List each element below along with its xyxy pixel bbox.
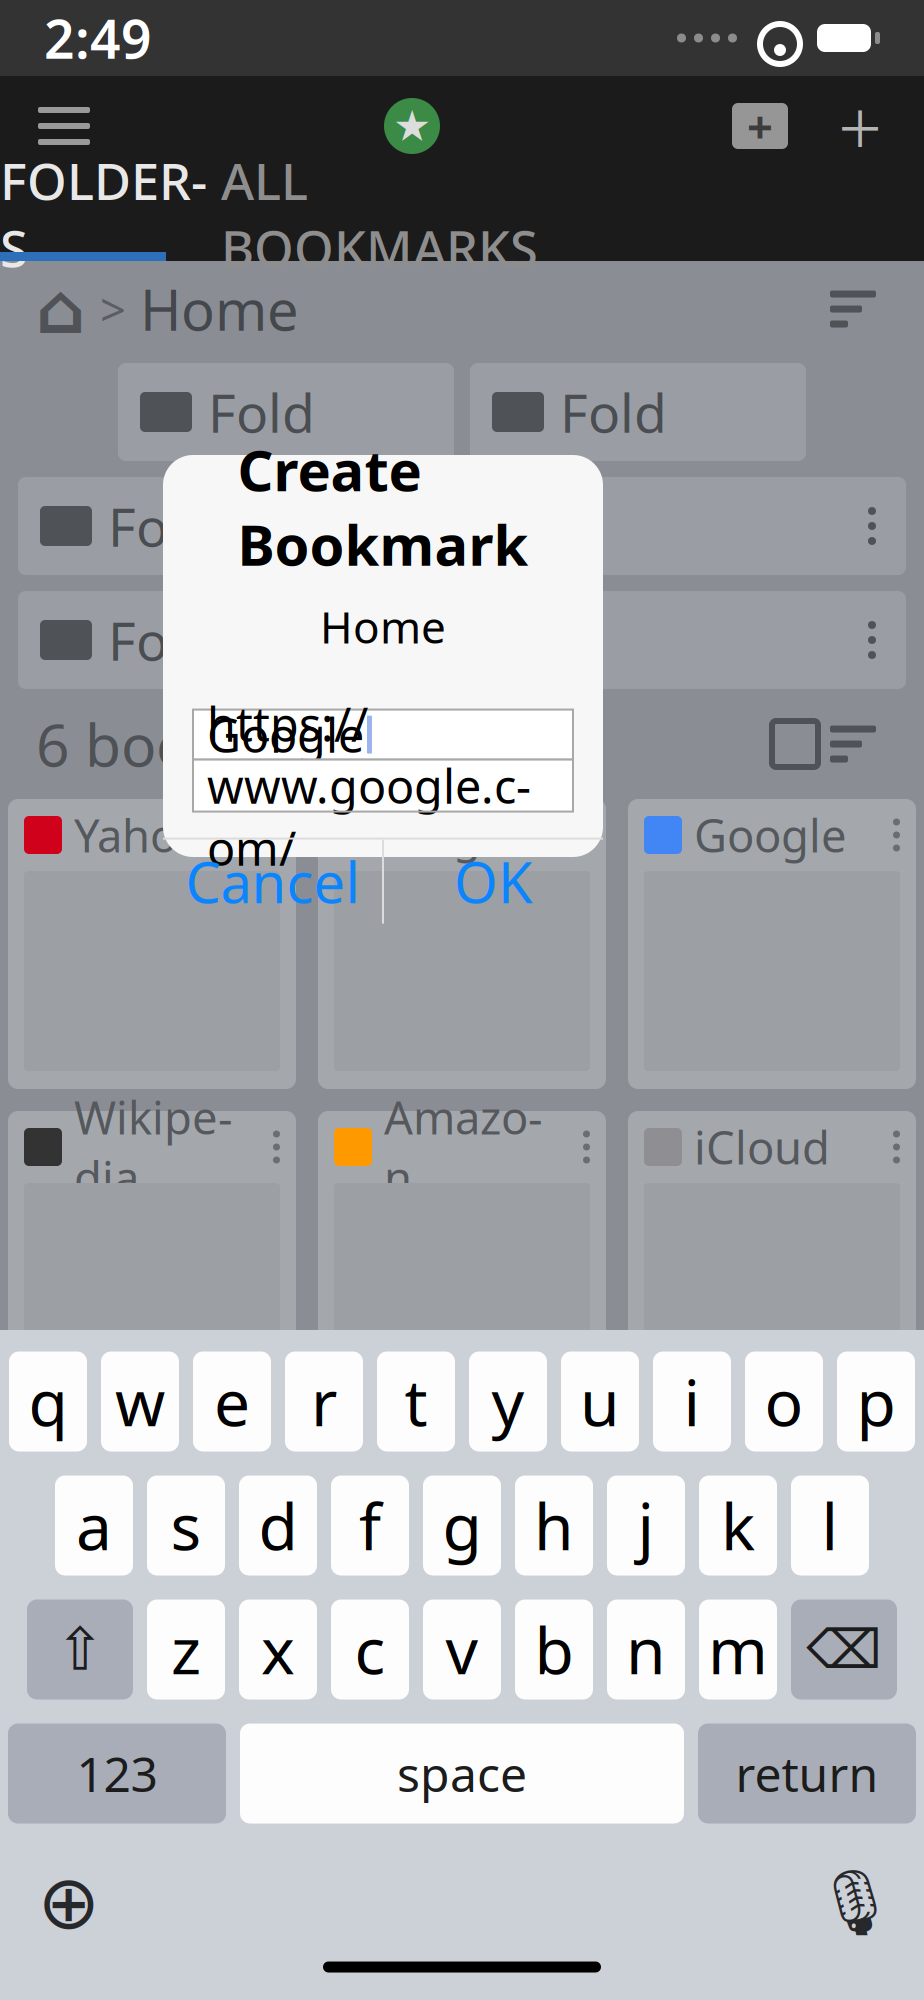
button[interactable]: s (147, 1475, 225, 1575)
button[interactable]: Fold (18, 477, 906, 575)
staticText: Cancel (185, 844, 359, 919)
staticText: t (404, 1359, 427, 1444)
staticText: ⌂ (36, 270, 86, 348)
button[interactable]: u (561, 1351, 639, 1451)
button[interactable]: f (331, 1475, 409, 1575)
staticText: FOLDERS (0, 147, 207, 281)
button[interactable]: Amazon (318, 1111, 606, 1401)
staticText: y (491, 1359, 524, 1444)
button[interactable]: n (607, 1599, 685, 1699)
button[interactable]: Wikipedia (8, 1111, 296, 1401)
button[interactable]: Google (628, 799, 916, 1089)
button[interactable]: j (607, 1475, 685, 1575)
button[interactable]: v (423, 1599, 501, 1699)
button[interactable]: y (469, 1351, 547, 1451)
button[interactable]: r (285, 1351, 363, 1451)
button[interactable]: d (239, 1475, 317, 1575)
button[interactable]: Grid view (772, 721, 818, 767)
button[interactable]: Fold (118, 363, 454, 461)
staticText: v (445, 1607, 478, 1692)
staticText: k (721, 1483, 755, 1568)
button[interactable]: w (101, 1351, 179, 1451)
button[interactable]: OK (384, 840, 603, 924)
staticText: ★ (393, 102, 431, 150)
staticText: Google (694, 805, 847, 865)
staticText: l (821, 1483, 838, 1568)
button[interactable]: x (239, 1599, 317, 1699)
button[interactable]: ALL BOOKMARKS (207, 176, 552, 252)
staticText: Google (207, 704, 364, 766)
staticText: m (708, 1607, 768, 1692)
staticText: u (580, 1359, 620, 1444)
button[interactable]: o (745, 1351, 823, 1451)
staticText: i (683, 1359, 700, 1444)
staticText: 2:49 (44, 3, 152, 73)
staticText: Fold (108, 491, 215, 561)
button[interactable]: Sort (818, 274, 888, 344)
button[interactable]: a (55, 1475, 133, 1575)
button[interactable]: Fold (18, 591, 906, 689)
staticText: p (856, 1359, 895, 1444)
button[interactable]: p (837, 1351, 915, 1451)
staticText: x (261, 1607, 295, 1692)
button[interactable]: b (515, 1599, 593, 1699)
button[interactable]: Yahoo! (8, 799, 296, 1089)
button[interactable]: iCloud (628, 1111, 916, 1401)
button[interactable]: Shift (27, 1599, 133, 1699)
button[interactable]: return (698, 1723, 916, 1823)
button[interactable]: New folder (710, 76, 810, 176)
staticText: ⇧ (55, 1616, 104, 1683)
staticText: iCloud (694, 1117, 830, 1177)
staticText: Fold (560, 377, 667, 447)
button[interactable]: t (377, 1351, 455, 1451)
staticText: 123 (76, 1742, 157, 1805)
button[interactable]: ⌂ (36, 270, 299, 348)
staticText: https://www.google.com/ (207, 693, 531, 878)
staticText: 6 bookmarks (36, 705, 393, 783)
staticText: a (76, 1483, 112, 1568)
button[interactable]: m (699, 1599, 777, 1699)
button[interactable]: i (653, 1351, 731, 1451)
button[interactable]: l (791, 1475, 869, 1575)
staticText: r (311, 1359, 337, 1444)
button[interactable]: Add bookmark (810, 76, 910, 176)
staticText: Home (320, 597, 446, 656)
staticText: Home (140, 272, 299, 346)
button[interactable]: Menu (14, 76, 114, 176)
staticText: OK (454, 844, 533, 919)
button[interactable]: e (193, 1351, 271, 1451)
staticText: w (115, 1359, 165, 1444)
staticText: q (28, 1359, 67, 1444)
button[interactable]: z (147, 1599, 225, 1699)
button[interactable]: Next keyboard (24, 1857, 114, 1947)
staticText: d (258, 1483, 297, 1568)
button[interactable]: 123 (8, 1723, 226, 1823)
button[interactable]: space (240, 1723, 684, 1823)
button[interactable]: Delete (791, 1599, 897, 1699)
button[interactable]: g (423, 1475, 501, 1575)
button[interactable]: Dictation (810, 1857, 900, 1947)
staticText: Fold (208, 377, 315, 447)
button[interactable]: Bing (318, 799, 606, 1089)
button[interactable]: c (331, 1599, 409, 1699)
button[interactable]: FOLDERS (0, 176, 207, 252)
staticText: ⌫ (806, 1619, 881, 1680)
button[interactable]: q (9, 1351, 87, 1451)
staticText: + (838, 75, 882, 177)
staticText: h (534, 1483, 574, 1568)
staticText: o (764, 1359, 803, 1444)
staticText: s (170, 1483, 201, 1568)
staticText: Create Bookmark (237, 432, 528, 581)
button[interactable]: Fold (470, 363, 806, 461)
button[interactable]: Sort (818, 709, 888, 779)
staticText: > (100, 279, 126, 339)
staticText: ⊕ (37, 1860, 100, 1945)
staticText: Yahoo! (74, 805, 216, 865)
staticText: e (214, 1359, 250, 1444)
staticText: + (747, 96, 773, 156)
button[interactable]: k (699, 1475, 777, 1575)
button[interactable]: Cancel (163, 840, 382, 924)
staticText: return (735, 1742, 878, 1805)
button[interactable]: h (515, 1475, 593, 1575)
staticText: space (397, 1742, 527, 1805)
